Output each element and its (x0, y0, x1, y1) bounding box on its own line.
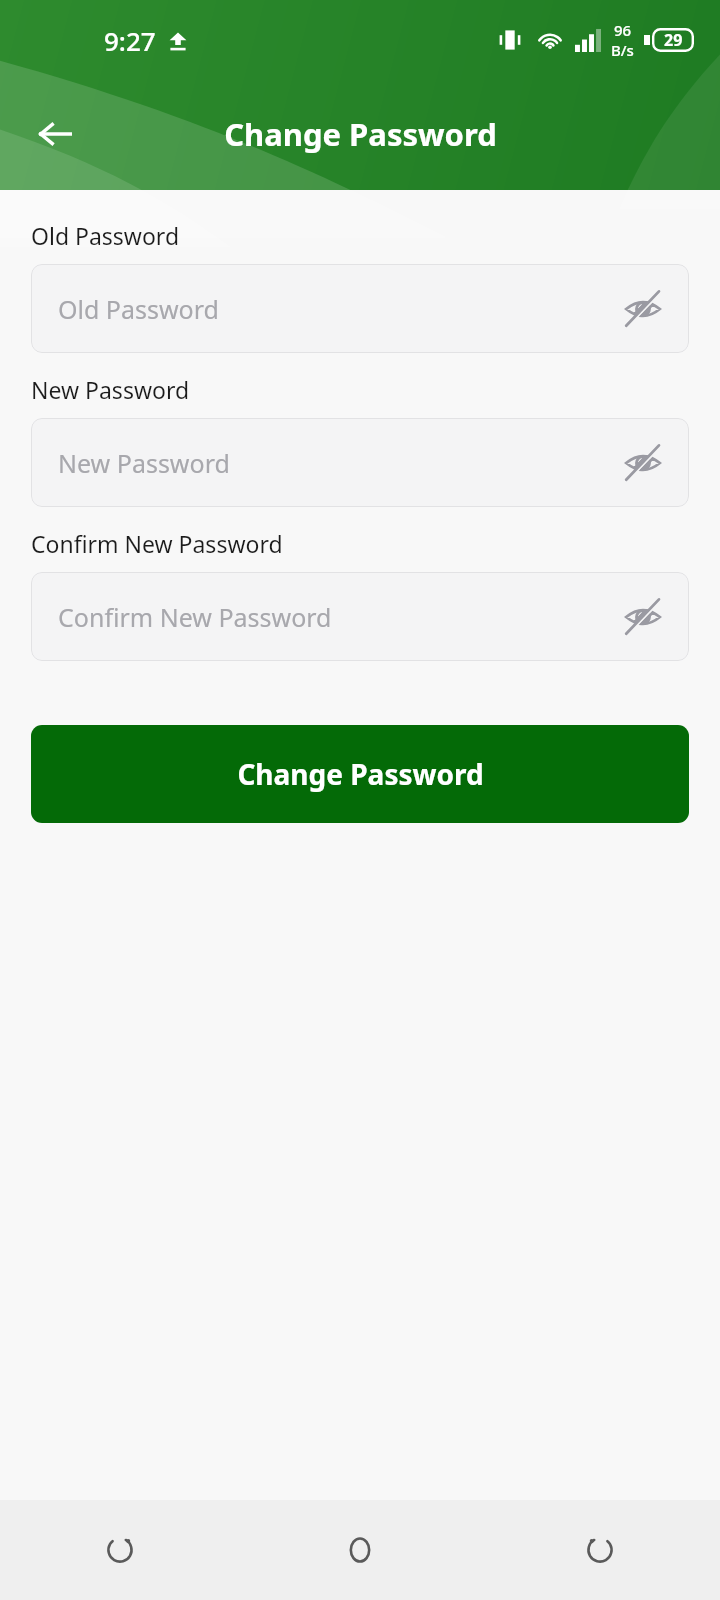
staticText: 96 (614, 20, 632, 40)
button[interactable]: Show password (615, 281, 671, 337)
staticText: 9:27 (104, 23, 156, 58)
staticText: B/s (611, 40, 634, 60)
button[interactable]: Back (24, 103, 86, 165)
staticText: New Password (58, 446, 230, 480)
button[interactable]: Show password (615, 589, 671, 645)
button[interactable]: New Password (31, 418, 689, 507)
staticText: Confirm New Password (31, 528, 283, 559)
button[interactable]: Old Password (31, 264, 689, 353)
button[interactable]: Confirm New Password (31, 572, 689, 661)
button[interactable]: Home (240, 1500, 480, 1600)
staticText: Old Password (31, 220, 180, 251)
staticText: Change Password (224, 113, 497, 155)
staticText: Change Password (237, 755, 484, 793)
staticText: New Password (31, 374, 190, 405)
staticText: Confirm New Password (58, 600, 332, 634)
button[interactable]: Back (480, 1500, 720, 1600)
staticText: 29 (664, 29, 683, 51)
button[interactable]: Show password (615, 435, 671, 491)
staticText: Old Password (58, 292, 219, 326)
button[interactable]: Change Password (31, 725, 689, 823)
button[interactable]: Recent apps (0, 1500, 240, 1600)
